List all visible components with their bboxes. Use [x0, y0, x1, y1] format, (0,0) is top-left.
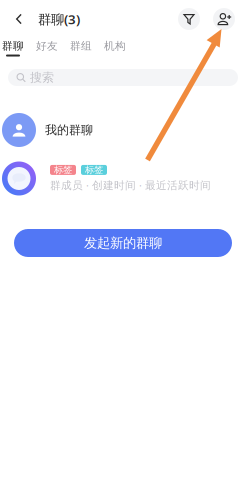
button[interactable]: 好友 [30, 37, 64, 59]
staticText: 标签 [54, 164, 72, 176]
staticText: 标签 [85, 164, 103, 176]
button[interactable]: Add contact [213, 8, 235, 30]
button[interactable]: 机构 [98, 37, 132, 59]
staticText: 群组 [70, 39, 92, 52]
button[interactable]: 群聊 [0, 37, 30, 59]
staticText: 好友 [36, 39, 58, 52]
button[interactable]: Filter [178, 8, 200, 30]
staticText: 我的群聊 [45, 123, 93, 137]
button[interactable]: 我的群聊 [0, 108, 246, 152]
staticText: 搜索 [30, 70, 54, 85]
staticText: 群成员 · 创建时间 · 最近活跃时间 [50, 178, 211, 192]
button[interactable]: 群组 [64, 37, 98, 59]
button[interactable]: Back [4, 4, 34, 34]
button[interactable]: 标签 [0, 156, 246, 201]
button[interactable]: 发起新的群聊 [14, 229, 232, 257]
staticText: 群聊 [2, 39, 24, 52]
staticText: 群聊(3) [38, 10, 80, 28]
staticText: 发起新的群聊 [84, 235, 162, 251]
staticText: 机构 [104, 39, 126, 52]
